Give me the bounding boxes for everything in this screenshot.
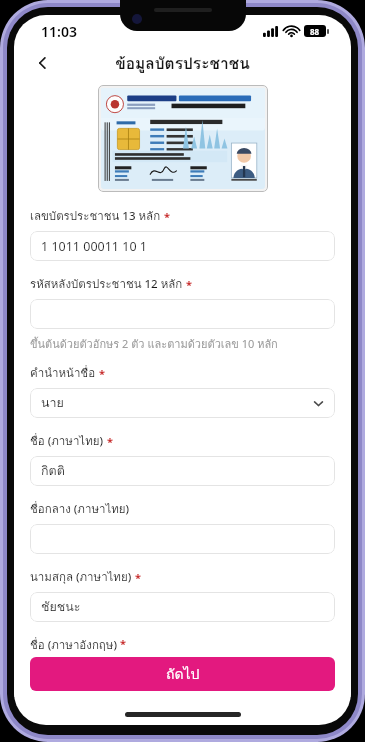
button[interactable]: Back xyxy=(28,48,58,78)
staticText: นามสกุล (ภาษาไทย) xyxy=(30,568,132,586)
staticText: ข้อมูลบัตรประชาชน xyxy=(115,51,250,76)
button[interactable]: กิตติ xyxy=(30,456,335,486)
staticText: ถัดไป xyxy=(166,663,200,685)
button[interactable]: 1 1011 00011 10 1 xyxy=(30,231,335,261)
staticText: 1 1011 00011 10 1 xyxy=(41,238,324,255)
button[interactable] xyxy=(30,524,335,554)
staticText: ชื่อ (ภาษาไทย) xyxy=(30,432,104,450)
staticText: ชื่อ (ภาษาอังกฤษ) xyxy=(30,636,117,651)
staticText: เลขบัตรประชาชน 13 หลัก xyxy=(30,207,161,225)
button[interactable]: ถัดไป xyxy=(30,657,335,691)
staticText: 11:03 xyxy=(41,22,77,41)
button[interactable] xyxy=(30,299,335,329)
staticText: * xyxy=(107,434,113,449)
staticText: * xyxy=(186,277,192,292)
staticText: ชัยชนะ xyxy=(41,597,324,617)
staticText: * xyxy=(164,209,170,224)
button[interactable]: ชัยชนะ xyxy=(30,592,335,622)
staticText: * xyxy=(135,570,141,585)
button[interactable]: นาย xyxy=(30,388,335,418)
staticText: นาย xyxy=(41,393,313,413)
staticText: 88 xyxy=(310,26,320,37)
staticText: ชื่อกลาง (ภาษาไทย) xyxy=(30,500,130,518)
staticText: กิตติ xyxy=(41,461,324,481)
staticText: * xyxy=(99,366,105,381)
staticText: ขึ้นต้นด้วยตัวอักษร 2 ตัว และตามด้วยตัวเ… xyxy=(30,335,278,352)
staticText: รหัสหลังบัตรประชาชน 12 หลัก xyxy=(30,275,183,293)
staticText: * xyxy=(120,636,126,651)
staticText: คำนำหน้าชื่อ xyxy=(30,364,96,382)
